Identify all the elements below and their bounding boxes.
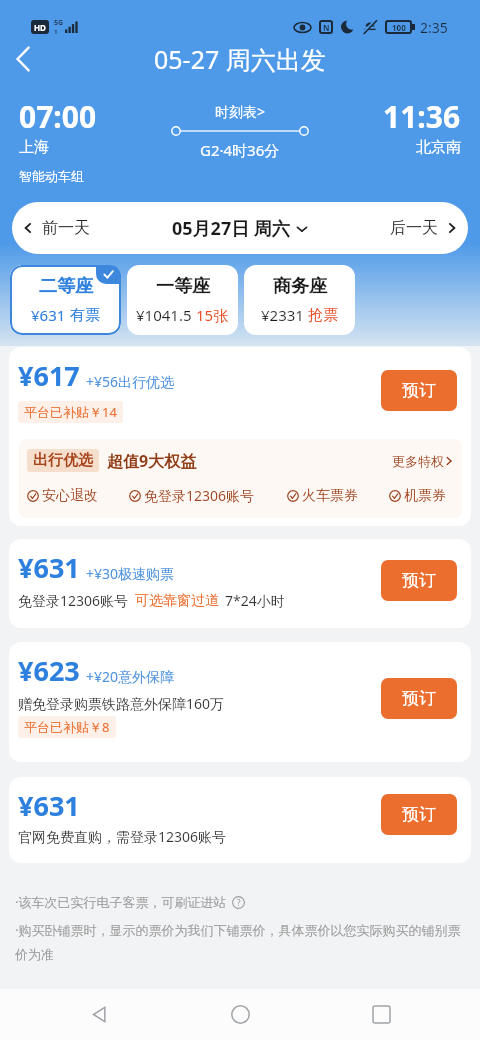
staticText: 抢票 xyxy=(308,306,338,325)
staticText: ¥1041.5 xyxy=(136,305,192,325)
staticText: 商务座 xyxy=(273,275,327,298)
staticText: 可选靠窗过道 xyxy=(135,592,219,610)
staticText: 07:00 xyxy=(19,96,97,137)
staticText: 前一天 xyxy=(42,218,90,238)
button[interactable]: 预订 xyxy=(381,794,457,835)
button[interactable]: 预订 xyxy=(381,678,457,719)
staticText: 100 xyxy=(392,22,406,33)
staticText: 预订 xyxy=(402,570,436,591)
staticText: ·该车次已实行电子客票，可刷证进站 xyxy=(15,893,227,911)
staticText: 05月27日 周六 xyxy=(172,216,290,241)
button[interactable]: Recents xyxy=(354,989,408,1040)
button[interactable]: 商务座 xyxy=(244,265,355,335)
staticText: +¥56出行优选 xyxy=(86,372,175,391)
staticText: 15张 xyxy=(196,305,229,325)
staticText: 超值9大权益 xyxy=(107,450,197,472)
button[interactable]: 一等座 xyxy=(127,265,238,335)
staticText: +¥20意外保障 xyxy=(86,667,175,686)
staticText: 北京南 xyxy=(416,138,461,157)
staticText: 后一天 xyxy=(390,218,438,238)
button[interactable]: 后一天 xyxy=(380,210,468,246)
button[interactable]: 二等座 xyxy=(10,265,121,335)
staticText: ¥2331 xyxy=(261,305,304,325)
staticText: 平台已补贴￥14 xyxy=(24,403,117,421)
staticText: 一等座 xyxy=(156,275,210,298)
staticText: 05-27 周六出发 xyxy=(154,42,326,76)
staticText: 5G xyxy=(54,18,64,28)
staticText: 免登录12306账号 xyxy=(144,486,255,505)
staticText: 2:35 xyxy=(420,18,448,37)
staticText: 7*24小时 xyxy=(225,591,285,610)
staticText: 预订 xyxy=(402,380,436,401)
staticText: G2·4时36分 xyxy=(200,140,280,160)
staticText: 机票券 xyxy=(404,487,446,505)
staticText: 更多特权 xyxy=(392,453,444,469)
staticText: ¥631 xyxy=(18,787,80,824)
staticText: 时刻表> xyxy=(215,102,266,121)
staticText: ·购买卧铺票时，显示的票价为我们下铺票价，具体票价以您实际购买的铺别票价为准 xyxy=(15,921,465,963)
staticText: ¥617 xyxy=(18,357,80,394)
staticText: 有票 xyxy=(70,306,100,325)
staticText: 智能动车组 xyxy=(19,168,84,184)
staticText: 免登录12306账号 xyxy=(18,591,129,610)
button[interactable]: Home xyxy=(213,989,267,1040)
staticText: 安心退改 xyxy=(42,487,98,505)
staticText: 1 xyxy=(54,28,58,36)
staticText: 平台已补贴￥8 xyxy=(24,718,110,736)
staticText: N xyxy=(323,22,330,33)
staticText: ¥631 xyxy=(31,305,66,325)
staticText: 上海 xyxy=(19,138,49,157)
staticText: +¥30极速购票 xyxy=(86,564,175,583)
staticText: 预订 xyxy=(402,688,436,709)
staticText: HD xyxy=(34,22,46,33)
staticText: 预订 xyxy=(402,804,436,825)
button[interactable]: 预订 xyxy=(381,560,457,601)
staticText: 火车票券 xyxy=(302,487,358,505)
button[interactable]: 05月27日 周六 xyxy=(172,208,308,249)
button[interactable]: 前一天 xyxy=(12,210,100,246)
staticText: 二等座 xyxy=(39,275,93,298)
staticText: ¥631 xyxy=(18,549,80,586)
button[interactable]: 预订 xyxy=(381,370,457,411)
staticText: 官网免费直购，需登录12306账号 xyxy=(18,827,227,846)
button[interactable]: Back xyxy=(72,989,126,1040)
staticText: ¥623 xyxy=(18,652,80,689)
staticText: ? xyxy=(237,897,241,908)
button[interactable]: Back xyxy=(0,40,46,78)
staticText: 11:36 xyxy=(383,96,461,137)
staticText: 赠免登录购票铁路意外保障160万 xyxy=(18,694,225,713)
staticText: 出行优选 xyxy=(33,451,93,470)
button[interactable]: 更多特权 xyxy=(392,453,454,469)
